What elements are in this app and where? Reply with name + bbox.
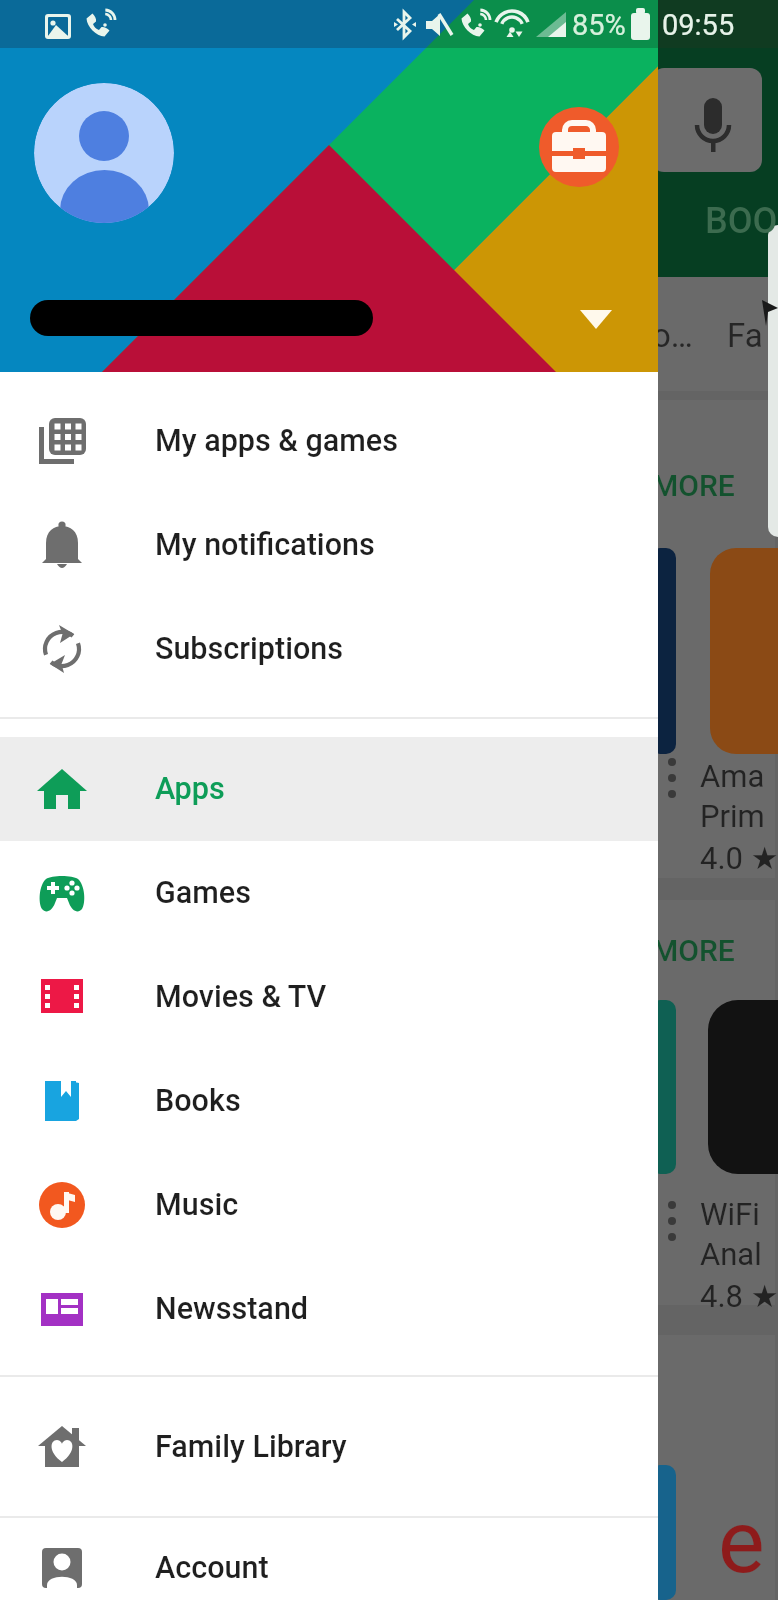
staticText: BOO bbox=[705, 200, 778, 242]
button[interactable]: Subscriptions bbox=[0, 597, 658, 701]
button[interactable]: Movies & TV bbox=[0, 945, 658, 1049]
staticText: Movies & TV bbox=[155, 979, 327, 1015]
button[interactable]: Expand account list bbox=[570, 288, 626, 344]
button[interactable]: My apps & games bbox=[0, 389, 658, 493]
button[interactable]: Family Library bbox=[0, 1395, 658, 1499]
staticText: o… bbox=[652, 316, 693, 355]
button[interactable]: Music bbox=[0, 1153, 658, 1257]
button[interactable]: Work profile bbox=[539, 107, 619, 187]
staticText: Games bbox=[155, 875, 251, 911]
button[interactable]: Newsstand bbox=[0, 1257, 658, 1361]
button[interactable]: Account avatar bbox=[34, 83, 174, 223]
staticText: MORE bbox=[652, 468, 735, 503]
staticText: Apps bbox=[155, 771, 225, 807]
staticText: 85% bbox=[572, 8, 626, 42]
button[interactable]: Games bbox=[0, 841, 658, 945]
staticText: WiFi Anal 4.8 ★ bbox=[700, 1196, 778, 1314]
staticText: My apps & games bbox=[155, 423, 398, 459]
staticText: MORE bbox=[652, 933, 735, 968]
button[interactable]: Account bbox=[0, 1536, 658, 1600]
staticText: Ama Prim 4.0 ★ bbox=[700, 758, 778, 876]
staticText: e bbox=[718, 1490, 765, 1593]
button[interactable]: Apps bbox=[0, 737, 658, 841]
staticText: 09:55 bbox=[662, 8, 735, 42]
button[interactable]: My notifications bbox=[0, 493, 658, 597]
staticText: Account bbox=[155, 1550, 269, 1586]
staticText: Family Library bbox=[155, 1429, 347, 1465]
button[interactable]: Books bbox=[0, 1049, 658, 1153]
staticText: Music bbox=[155, 1187, 239, 1223]
staticText: Books bbox=[155, 1083, 241, 1119]
staticText: Subscriptions bbox=[155, 631, 344, 667]
staticText: Fa bbox=[727, 316, 763, 355]
staticText: Newsstand bbox=[155, 1291, 309, 1327]
staticText: My notifications bbox=[155, 527, 375, 563]
